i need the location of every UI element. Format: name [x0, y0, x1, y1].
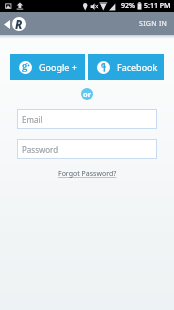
- staticText: 92%: [121, 1, 135, 11]
- staticText: SIGN IN: [139, 19, 168, 29]
- staticText: Google +: [39, 61, 77, 73]
- button[interactable]: Back: [0, 13, 29, 35]
- button[interactable]: Forgot Password?: [58, 169, 117, 179]
- button[interactable]: Password: [17, 139, 157, 159]
- button[interactable]: Email: [17, 109, 157, 129]
- staticText: Facebook: [117, 61, 158, 73]
- staticText: or: [83, 89, 92, 99]
- staticText: R: [15, 17, 23, 31]
- button[interactable]: g: [10, 54, 85, 80]
- button[interactable]: SIGN IN: [133, 14, 174, 34]
- button[interactable]: Facebook: [88, 54, 164, 80]
- staticText: g: [22, 59, 28, 72]
- staticText: Email: [22, 114, 43, 125]
- staticText: Password: [22, 144, 59, 155]
- staticText: 5:11 PM: [144, 1, 171, 11]
